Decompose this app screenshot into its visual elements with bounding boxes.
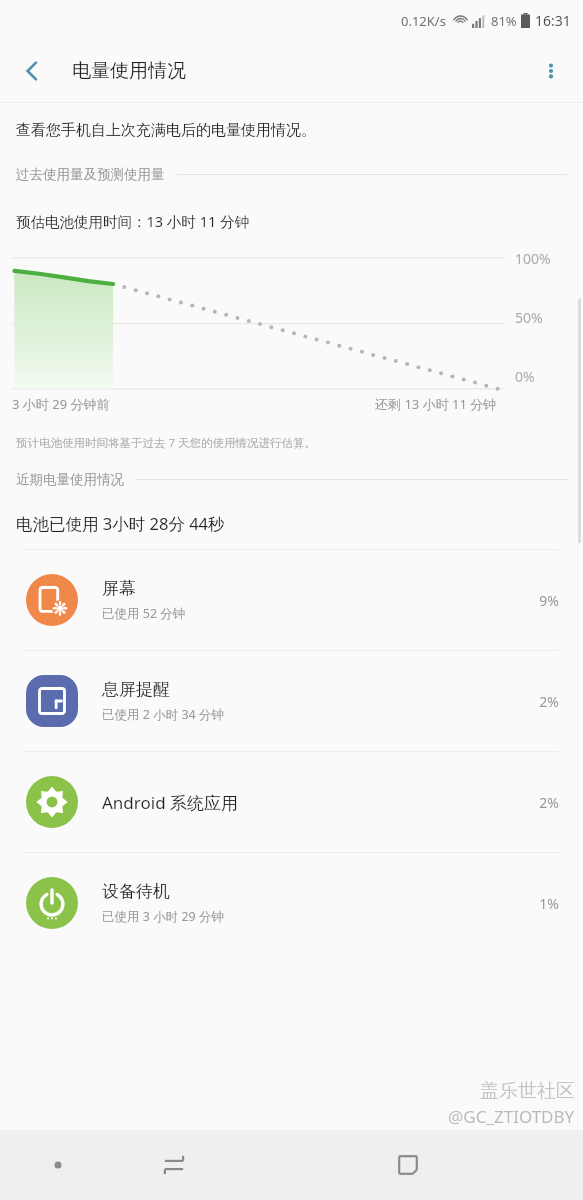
staticText: 2%	[539, 692, 559, 711]
button[interactable]: 设备待机	[0, 853, 583, 953]
staticText: 已使用 2 小时 34 分钟	[102, 706, 224, 723]
staticText: 盖乐世社区	[480, 1079, 575, 1103]
staticText: 81%	[491, 12, 517, 30]
staticText: 电量使用情况	[72, 59, 186, 83]
staticText: 1%	[539, 894, 559, 913]
staticText: 已使用 3 小时 29 分钟	[102, 908, 224, 925]
button[interactable]: Android 系统应用	[0, 752, 583, 852]
staticText: 预计电池使用时间将基于过去 7 天您的使用情况进行估算。	[16, 435, 317, 451]
button[interactable]: Menu	[0, 1130, 116, 1200]
button[interactable]: 息屏提醒	[0, 651, 583, 751]
staticText: 2%	[539, 793, 559, 812]
staticText: 预估电池使用时间：13 小时 11 分钟	[16, 211, 249, 231]
staticText: 0.12K/s	[401, 12, 446, 30]
button[interactable]: 屏幕	[0, 550, 583, 650]
staticText: 还剩 13 小时 11 分钟	[375, 395, 497, 413]
staticText: 电池已使用 3小时 28分 44秒	[16, 512, 225, 535]
button[interactable]: Recents	[116, 1130, 232, 1200]
staticText: 0%	[515, 367, 535, 386]
staticText: 查看您手机自上次充满电后的电量使用情况。	[16, 121, 316, 140]
staticText: 9%	[539, 591, 559, 610]
staticText: 100%	[515, 249, 551, 268]
staticText: 16:31	[535, 11, 571, 30]
staticText: @GC_ZTIOTDBY	[448, 1105, 575, 1128]
staticText: 近期电量使用情况	[16, 471, 124, 488]
staticText: 设备待机	[102, 881, 170, 902]
staticText: 屏幕	[102, 578, 136, 599]
button[interactable]: Back	[349, 1130, 466, 1200]
staticText: 过去使用量及预测使用量	[16, 166, 165, 183]
staticText: 息屏提醒	[102, 679, 170, 700]
staticText: 3 小时 29 分钟前	[12, 395, 110, 413]
button[interactable]: More options	[527, 47, 575, 95]
button[interactable]: Back	[6, 45, 58, 97]
staticText: 50%	[515, 308, 543, 327]
staticText: Android 系统应用	[102, 791, 239, 814]
staticText: 已使用 52 分钟	[102, 605, 186, 622]
